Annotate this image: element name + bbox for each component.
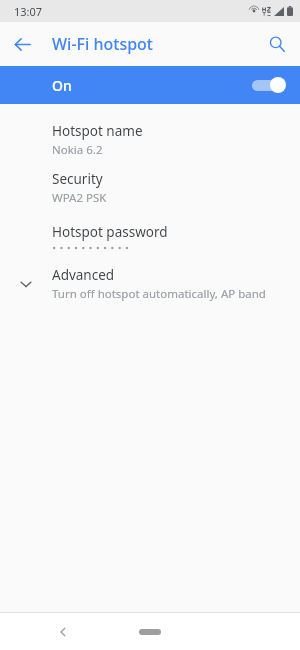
- button[interactable]: Hotspot name: [0, 116, 300, 164]
- staticText: Advanced: [52, 266, 115, 284]
- staticText: WPA2 PSK: [52, 190, 107, 206]
- staticText: Turn off hotspot automatically, AP band: [52, 286, 266, 302]
- staticText: Hotspot password: [52, 223, 168, 241]
- button[interactable]: Hotspot password: [0, 212, 300, 260]
- button[interactable]: Home: [128, 622, 172, 642]
- staticText: Security: [52, 170, 103, 188]
- staticText: On: [52, 76, 72, 95]
- staticText: Wi-Fi hotspot: [52, 33, 153, 55]
- button[interactable]: On: [0, 66, 300, 104]
- button[interactable]: Security: [0, 164, 300, 212]
- button[interactable]: Advanced: [0, 260, 300, 308]
- button[interactable]: Search: [262, 29, 292, 59]
- button[interactable]: Back: [8, 30, 36, 58]
- staticText: 13:07: [14, 4, 43, 19]
- staticText: Hotspot name: [52, 122, 143, 140]
- staticText: Nokia 6.2: [52, 142, 103, 158]
- button[interactable]: Back: [50, 619, 76, 645]
